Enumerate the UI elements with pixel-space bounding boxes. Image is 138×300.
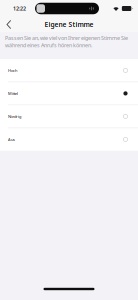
staticText: Aus bbox=[8, 137, 15, 142]
button[interactable]: Mittel bbox=[0, 82, 138, 105]
staticText: Hoch bbox=[8, 68, 17, 73]
button[interactable]: Back bbox=[0, 17, 20, 32]
button[interactable]: Niedrig bbox=[0, 105, 138, 128]
button[interactable]: Hoch bbox=[0, 59, 138, 82]
staticText: Mittel bbox=[8, 91, 18, 96]
button[interactable]: Aus bbox=[0, 128, 138, 151]
staticText: Niedrig bbox=[8, 114, 21, 119]
staticText: 12:22 bbox=[13, 5, 26, 12]
staticText: Eigene Stimme bbox=[44, 20, 93, 29]
staticText: Passen Sie an, wie viel von Ihrer eigene… bbox=[5, 34, 128, 49]
